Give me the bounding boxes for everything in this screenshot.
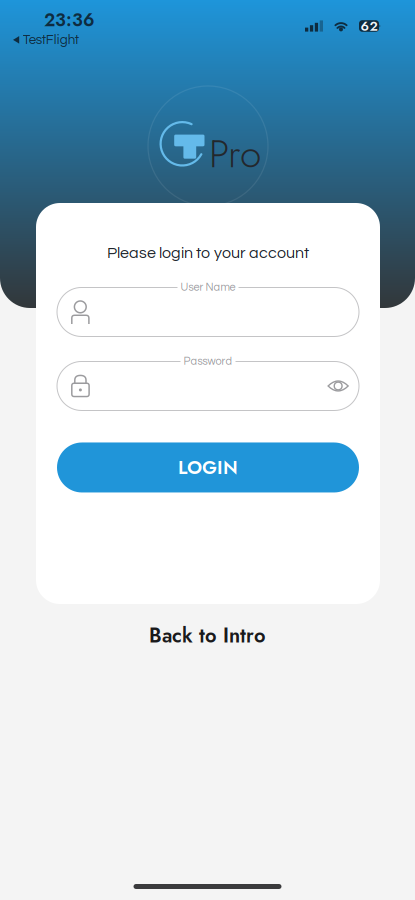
staticText: Pro [209, 126, 261, 182]
staticText: Password [183, 356, 232, 367]
staticText: Back to Intro [149, 621, 266, 650]
button[interactable]: Back to Intro [131, 612, 284, 659]
staticText: 62 [360, 16, 377, 36]
staticText: Please login to your account [107, 245, 309, 261]
staticText: TestFlight [23, 33, 79, 47]
staticText: LOGIN [178, 454, 238, 481]
staticText: 23:36 [44, 7, 95, 33]
staticText: User Name [180, 282, 235, 293]
button[interactable]: LOGIN [57, 442, 359, 492]
